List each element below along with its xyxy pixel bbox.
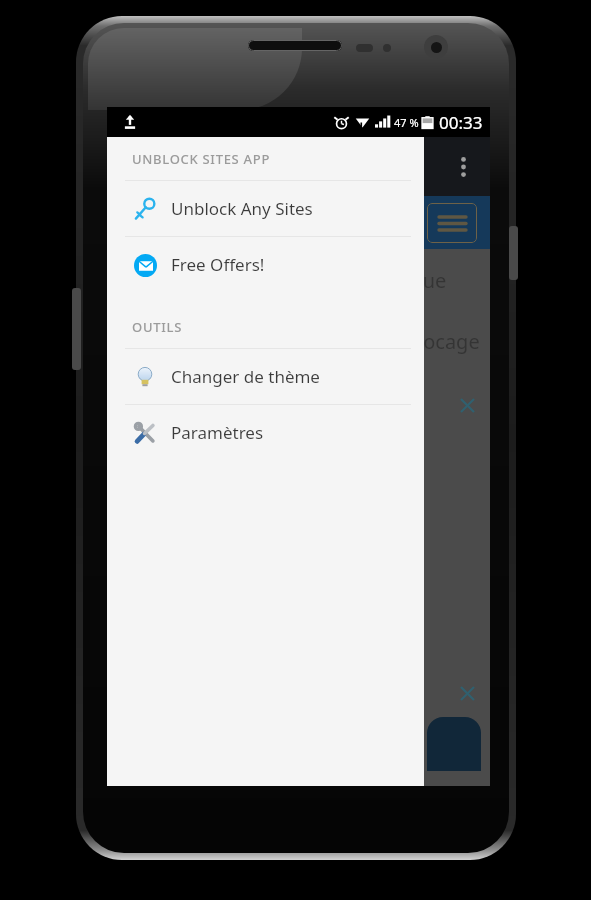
staticText: UNBLOCK SITES APP [132, 150, 271, 168]
button[interactable]: Open navigation menu [427, 203, 477, 243]
button[interactable]: Unblock Any Sites [107, 181, 424, 236]
button[interactable]: Close ad [459, 685, 476, 702]
staticText: Débloquez n'importe quel site que vous v… [123, 267, 490, 354]
staticText: OUTILS [132, 318, 182, 336]
staticText: Free Offers! [171, 253, 265, 276]
staticText: 47 % [394, 115, 419, 130]
staticText: Changer de thème [171, 365, 320, 388]
button[interactable]: Close ad [459, 397, 476, 414]
button[interactable]: Free Offers! [107, 237, 424, 292]
staticText: 00:33 [439, 111, 483, 134]
staticText: Paramètres [171, 421, 264, 444]
button[interactable]: More options [445, 144, 481, 190]
button[interactable]: Action button [427, 717, 481, 771]
button[interactable]: Changer de thème [107, 349, 424, 404]
staticText: Unblock Any Sites [171, 197, 313, 220]
button[interactable]: Paramètres [107, 405, 424, 460]
